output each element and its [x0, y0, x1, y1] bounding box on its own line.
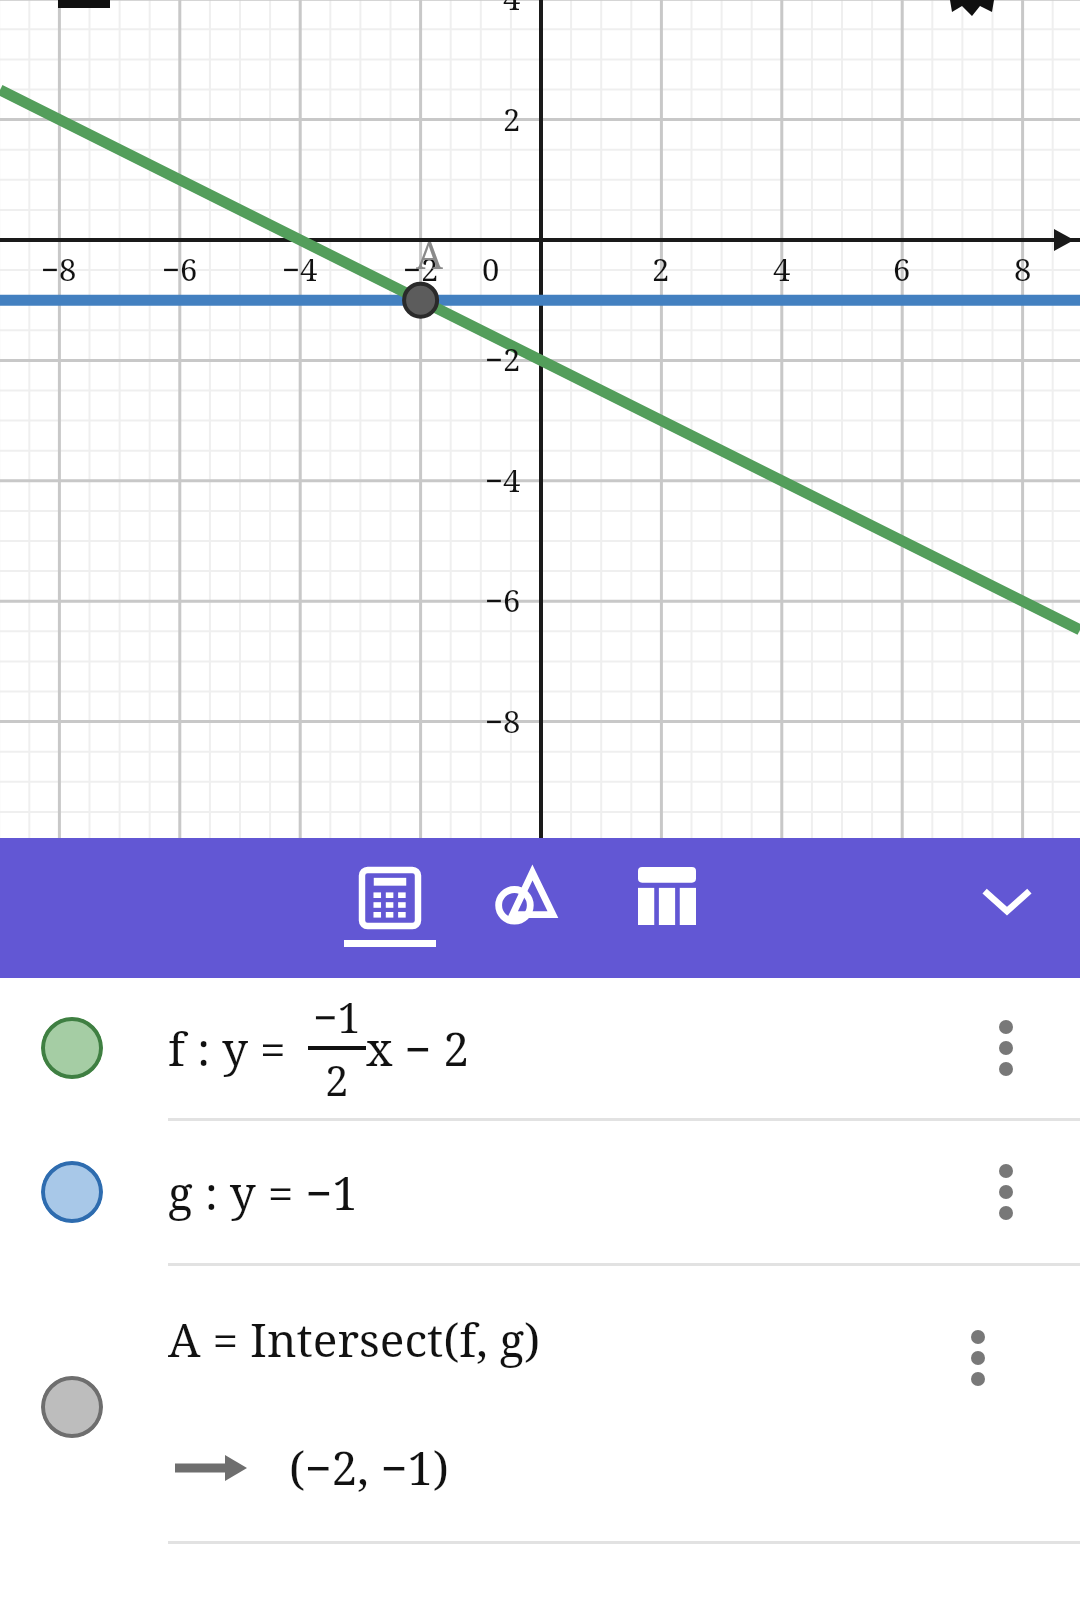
staticText: 2: [652, 248, 670, 290]
staticText: −2: [403, 248, 439, 290]
staticText: −4: [485, 459, 521, 501]
button[interactable]: Algebra view: [330, 838, 450, 978]
button[interactable]: More options: [930, 1310, 1026, 1406]
button[interactable]: Collapse: [952, 845, 1062, 955]
button[interactable]: Toggle visibility: [41, 1017, 103, 1079]
staticText: x − 2: [366, 1017, 469, 1080]
staticText: f : y =: [168, 1017, 286, 1080]
staticText: A = Intersect(f, g): [168, 1308, 541, 1371]
staticText: g : y = −1: [168, 1161, 358, 1224]
button[interactable]: Table: [607, 838, 727, 978]
staticText: 8: [1014, 248, 1032, 290]
staticText: A: [416, 228, 443, 280]
button[interactable]: Toggle visibility: [0, 1121, 1080, 1263]
button[interactable]: Toggle visibility: [0, 1266, 1080, 1541]
staticText: 6: [893, 248, 911, 290]
staticText: −1: [313, 988, 361, 1045]
staticText: 0: [482, 248, 500, 290]
button[interactable]: More options: [958, 1144, 1054, 1240]
staticText: −8: [485, 700, 521, 742]
button[interactable]: Tools: [465, 838, 585, 978]
staticText: 4: [503, 0, 521, 19]
button[interactable]: Toggle visibility: [41, 1161, 103, 1223]
button[interactable]: Toggle visibility: [0, 978, 1080, 1118]
staticText: −6: [162, 248, 198, 290]
staticText: 2: [503, 98, 521, 140]
button[interactable]: Toggle visibility: [41, 1376, 103, 1438]
staticText: 4: [773, 248, 791, 290]
button[interactable]: More options: [958, 1000, 1054, 1096]
staticText: (−2, −1): [289, 1436, 449, 1499]
staticText: 2: [325, 1051, 349, 1108]
staticText: −6: [485, 579, 521, 621]
staticText: −4: [282, 248, 318, 290]
staticText: −8: [41, 248, 77, 290]
staticText: −2: [485, 338, 521, 380]
